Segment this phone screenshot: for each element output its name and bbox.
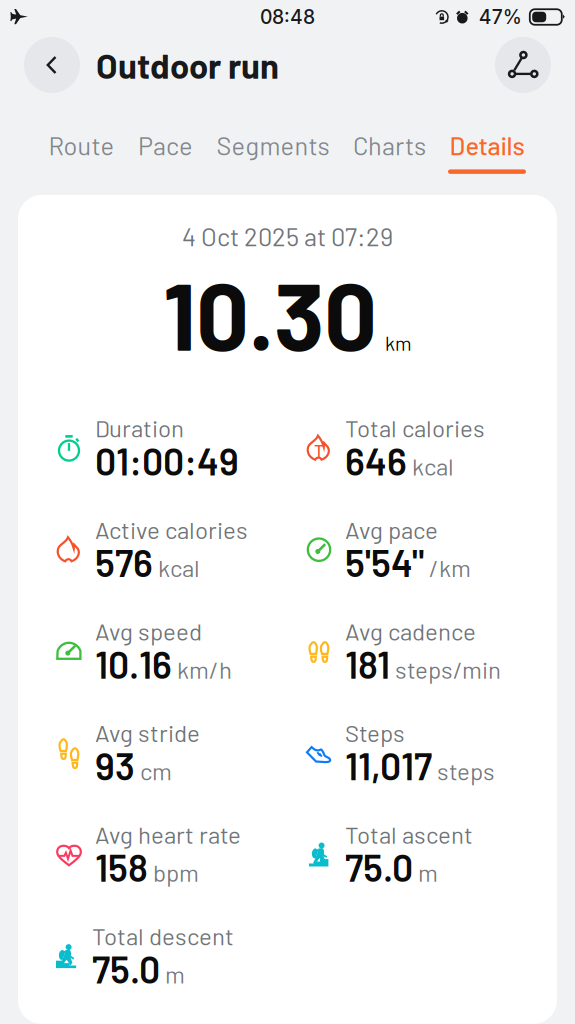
staticText: Steps [345, 718, 405, 747]
button[interactable]: Back [24, 37, 80, 93]
staticText: 158 [95, 844, 148, 889]
staticText: Duration [95, 413, 184, 442]
staticText: steps [437, 756, 495, 785]
staticText: 4 Oct 2025 at 07:29 [182, 221, 393, 251]
staticText: kcal [412, 451, 454, 480]
staticText: cm [140, 756, 172, 785]
staticText: 10.16 [95, 641, 172, 686]
staticText: 75.0 [345, 844, 413, 889]
staticText: Charts [353, 130, 426, 160]
staticText: 10.30 [163, 257, 377, 369]
staticText: Pace [138, 130, 193, 160]
staticText: 646 [345, 438, 407, 483]
staticText: 576 [95, 540, 153, 584]
staticText: Outdoor run [96, 44, 279, 86]
staticText: T [314, 440, 324, 460]
staticText: m [418, 858, 438, 887]
staticText: steps/min [395, 655, 501, 683]
staticText: 01:00:49 [95, 438, 239, 483]
staticText: Avg stride [95, 718, 200, 747]
staticText: 08:48 [260, 5, 315, 29]
staticText: 11,017 [345, 743, 432, 788]
staticText: 75.0 [92, 946, 160, 991]
staticText: Route [48, 130, 114, 160]
staticText: Avg speed [95, 616, 202, 645]
staticText: Total descent [92, 921, 234, 950]
staticText: Total calories [345, 413, 485, 442]
staticText: 93 [95, 743, 135, 788]
staticText: /km [429, 553, 471, 582]
button[interactable]: Route [47, 130, 116, 174]
button[interactable]: Share [495, 37, 551, 93]
staticText: 47% [479, 5, 522, 29]
button[interactable]: Details [448, 130, 526, 174]
staticText: Segments [216, 130, 329, 160]
button[interactable]: Pace [136, 130, 194, 174]
staticText: 5'54" [345, 540, 424, 584]
staticText: Avg cadence [345, 616, 476, 645]
staticText: Active calories [95, 515, 248, 544]
staticText: bpm [153, 858, 199, 887]
staticText: Details [449, 130, 524, 160]
button[interactable]: Charts [351, 130, 427, 174]
staticText: Avg heart rate [95, 820, 241, 848]
staticText: Total ascent [345, 820, 473, 848]
staticText: Avg pace [345, 515, 438, 544]
staticText: km/h [177, 655, 232, 683]
staticText: km [385, 331, 412, 355]
button[interactable]: Segments [215, 130, 331, 174]
staticText: 181 [345, 641, 390, 686]
staticText: kcal [158, 553, 200, 582]
staticText: m [165, 959, 185, 988]
